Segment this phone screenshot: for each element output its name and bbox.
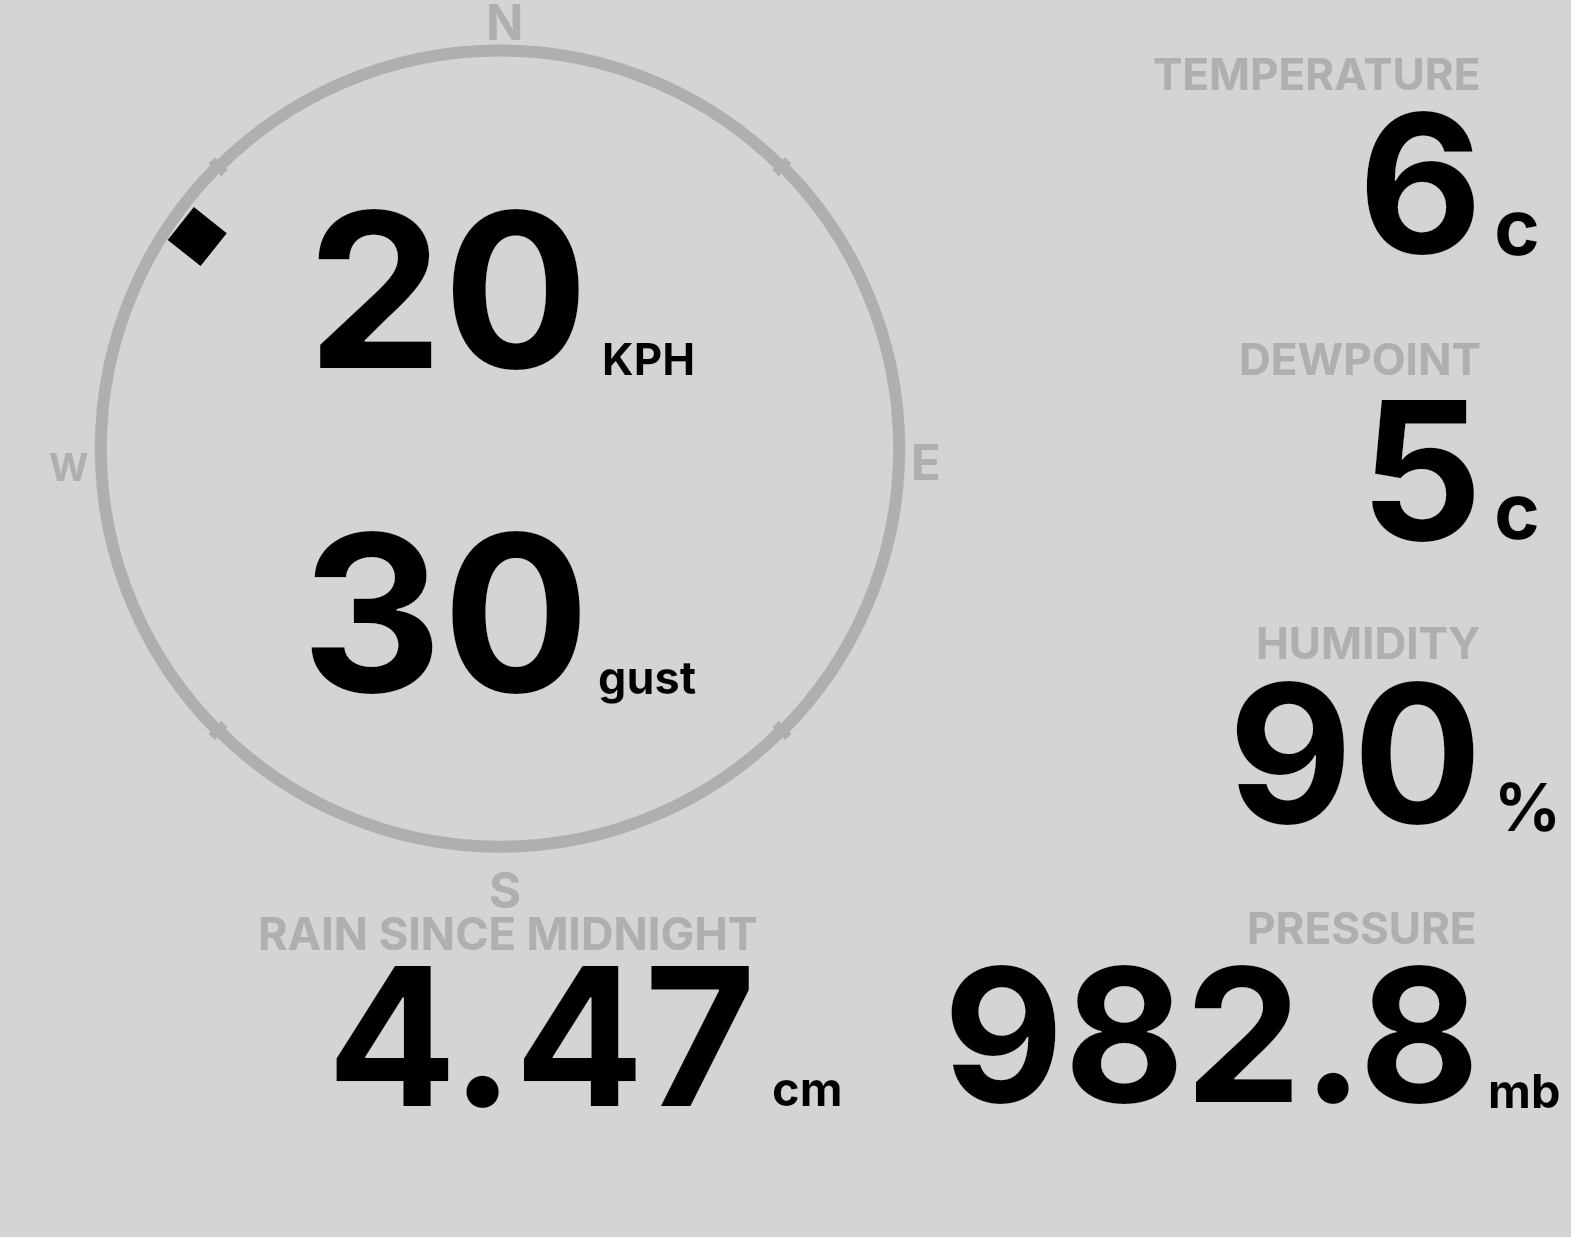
staticText: mb <box>1488 1062 1561 1119</box>
button[interactable]: Wind speed 20 KPH <box>300 150 700 390</box>
staticText: TEMPERATURE <box>1153 47 1481 100</box>
button[interactable]: Humidity 90 percent <box>1100 609 1560 840</box>
staticText: 30 <box>301 480 591 745</box>
staticText: S <box>489 861 522 920</box>
staticText: % <box>1494 767 1562 847</box>
staticText: HUMIDITY <box>1256 616 1481 669</box>
staticText: gust <box>598 650 697 704</box>
staticText: PRESSURE <box>1247 901 1477 954</box>
staticText: c <box>1494 179 1540 273</box>
button[interactable]: Temperature 6 degrees Celsius <box>1100 40 1560 270</box>
button[interactable]: Pressure 982.8 millibars <box>945 898 1560 1115</box>
staticText: RAIN SINCE MIDNIGHT <box>258 906 758 960</box>
staticText: 20 <box>307 159 589 420</box>
button[interactable]: Wind gust 30 KPH <box>300 470 700 715</box>
staticText: 982.8 <box>943 922 1480 1147</box>
staticText: E <box>911 433 941 492</box>
staticText: 90 <box>1228 637 1483 869</box>
staticText: 6 <box>1358 67 1483 299</box>
button[interactable]: Wind direction compass, 305 degrees nort… <box>100 49 900 849</box>
staticText: DEWPOINT <box>1239 332 1481 385</box>
button[interactable]: Dew point 5 degrees Celsius <box>1100 325 1560 555</box>
staticText: N <box>486 0 524 52</box>
staticText: c <box>1494 463 1540 557</box>
staticText: 4.47 <box>327 920 756 1152</box>
staticText: 5 <box>1360 354 1483 586</box>
staticText: KPH <box>602 332 696 385</box>
staticText: cm <box>772 1060 843 1117</box>
staticText: W <box>49 444 89 490</box>
button[interactable]: Rain since midnight 4.47 cm <box>255 900 855 1115</box>
